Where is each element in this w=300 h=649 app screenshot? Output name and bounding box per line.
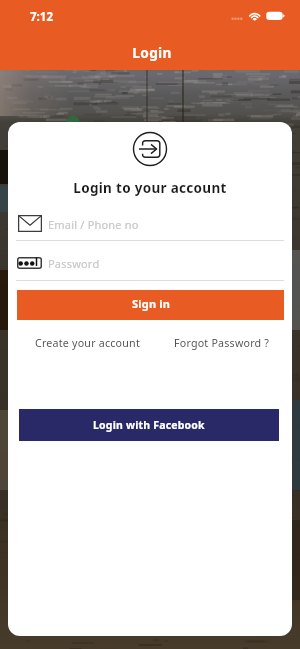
button[interactable]: Forgot Password ? [166, 333, 278, 354]
staticText: Forgot Password ? [174, 336, 270, 351]
other: Login [132, 131, 168, 167]
button[interactable]: Sign in [17, 290, 284, 320]
button[interactable]: Create your account [27, 333, 148, 354]
staticText: Sign in [132, 296, 171, 311]
button[interactable]: Login with Facebook [19, 409, 279, 441]
staticText: 7:12 [30, 9, 53, 25]
staticText: Email / Phone no [48, 217, 139, 232]
staticText: Login [2, 43, 300, 62]
staticText: Create your account [35, 336, 140, 351]
staticText: Login to your account [8, 179, 292, 197]
staticText: Password [48, 256, 100, 271]
staticText: Login with Facebook [93, 418, 205, 432]
